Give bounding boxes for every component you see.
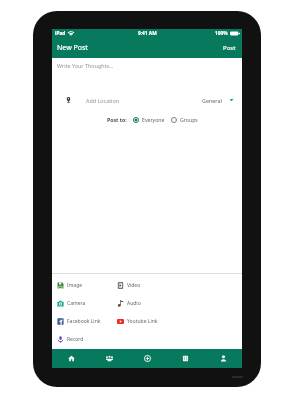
staticText: Everyone [142,116,165,123]
button[interactable]: Everyone [133,116,165,123]
staticText: General [202,97,222,104]
button[interactable]: Profile [204,349,242,368]
button[interactable]: Record [52,330,112,348]
staticText: New Post [57,43,88,53]
button[interactable]: Camera [52,294,112,312]
staticText: Record [67,336,84,343]
staticText: 100% [215,30,228,37]
staticText: Audio [127,300,141,307]
staticText: iPad [55,30,66,37]
staticText: Camera [67,300,86,307]
staticText: Groups [180,116,198,123]
button[interactable]: Video [112,276,182,294]
staticText: Add Location [86,97,120,104]
button[interactable]: Youtube Link [112,312,182,330]
button[interactable]: Facebook Link [52,312,112,330]
button[interactable]: Add [128,349,166,368]
staticText: Youtube Link [127,318,158,325]
button[interactable]: Image [52,276,112,294]
staticText: Facebook Link [67,318,101,325]
staticText: Post [223,44,236,52]
staticText: 9:41 AM [138,30,157,37]
button[interactable]: Home [52,349,90,368]
button[interactable]: Post [218,42,242,54]
button[interactable]: New Post [52,41,92,55]
staticText: Video [127,282,141,289]
button[interactable]: Groups [171,116,198,123]
button[interactable]: Feed [166,349,204,368]
staticText: Image [67,282,83,289]
button[interactable]: Groups [90,349,128,368]
button[interactable]: Audio [112,294,182,312]
staticText: Write Your Thoughts... [57,62,114,69]
staticText: Post to: [107,116,127,123]
